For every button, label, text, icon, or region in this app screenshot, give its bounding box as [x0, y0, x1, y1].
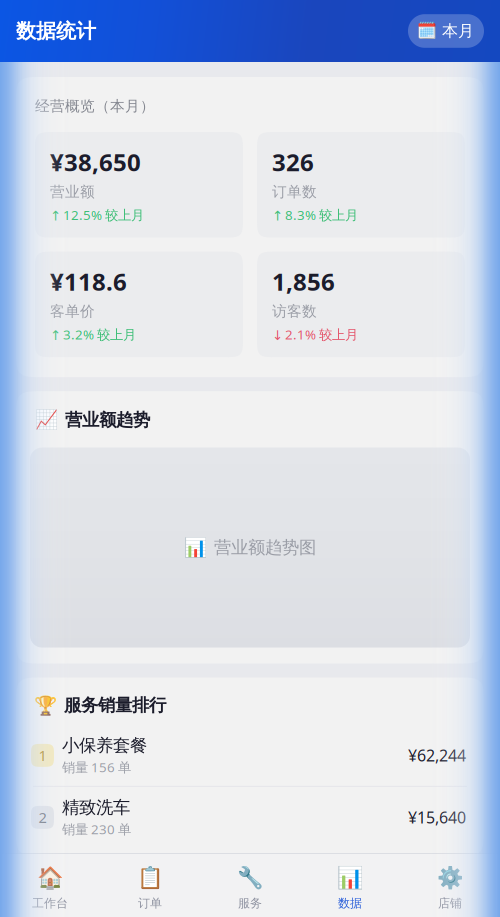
- staticText: 销量 156 单: [62, 758, 131, 776]
- staticText: 订单数: [272, 183, 317, 201]
- staticText: ¥15,640: [408, 807, 466, 828]
- staticText: 🗓️: [417, 22, 437, 40]
- button[interactable]: 2: [16, 787, 484, 848]
- button[interactable]: ⚙️: [400, 854, 500, 916]
- button[interactable]: 326: [257, 132, 465, 238]
- staticText: 服务销量排行: [64, 695, 166, 716]
- button[interactable]: 🔧: [200, 854, 300, 916]
- staticText: 🏠: [36, 865, 63, 890]
- staticText: 1: [38, 746, 46, 765]
- staticText: 销量 230 单: [62, 820, 131, 838]
- staticText: 📈: [35, 409, 58, 430]
- button[interactable]: 1,856: [257, 252, 465, 357]
- button[interactable]: ¥118.6: [35, 252, 243, 357]
- staticText: ↑ 3.2% 较上月: [50, 325, 136, 343]
- staticText: 📊: [184, 537, 207, 558]
- staticText: ⚙️: [436, 865, 463, 890]
- staticText: 店铺: [438, 896, 462, 910]
- staticText: 2: [38, 808, 46, 827]
- staticText: 🔧: [236, 865, 263, 890]
- staticText: 数据: [338, 896, 362, 910]
- staticText: ¥62,244: [408, 745, 466, 766]
- staticText: 326: [272, 146, 314, 178]
- staticText: 访客数: [272, 302, 317, 320]
- staticText: 服务: [238, 896, 262, 910]
- button[interactable]: 🗓️: [408, 14, 484, 48]
- staticText: 数据统计: [16, 19, 96, 43]
- staticText: ¥118.6: [50, 266, 127, 297]
- staticText: 📋: [136, 865, 163, 890]
- staticText: ↑ 12.5% 较上月: [50, 206, 144, 224]
- staticText: 客单价: [50, 302, 95, 320]
- button[interactable]: 📋: [100, 854, 200, 916]
- staticText: 营业额: [50, 183, 95, 201]
- staticText: 1,856: [272, 266, 335, 297]
- staticText: ↓ 2.1% 较上月: [272, 325, 358, 343]
- staticText: 经营概览（本月）: [35, 97, 155, 115]
- staticText: ↑ 8.3% 较上月: [272, 206, 358, 224]
- staticText: 小保养套餐: [62, 735, 147, 756]
- staticText: ¥38,650: [50, 146, 141, 178]
- staticText: 订单: [138, 896, 162, 910]
- button[interactable]: ¥38,650: [35, 132, 243, 238]
- button[interactable]: 1: [16, 725, 484, 786]
- staticText: 营业额趋势: [65, 409, 150, 430]
- button[interactable]: 📊: [300, 854, 400, 916]
- staticText: 🏆: [34, 694, 57, 716]
- staticText: 工作台: [32, 896, 68, 910]
- staticText: 精致洗车: [62, 797, 130, 818]
- button[interactable]: 🏠: [0, 854, 100, 916]
- staticText: 营业额趋势图: [214, 537, 316, 558]
- staticText: 📊: [336, 865, 363, 890]
- staticText: 本月: [442, 21, 474, 41]
